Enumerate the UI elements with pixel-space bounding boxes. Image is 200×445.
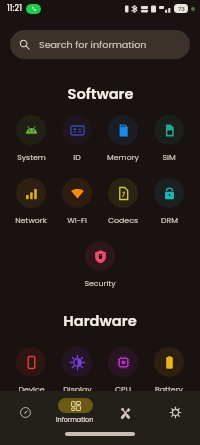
staticText: Network bbox=[15, 215, 47, 226]
button[interactable]: Display bbox=[52, 347, 102, 395]
button[interactable]: SIM bbox=[144, 115, 194, 163]
button[interactable]: System bbox=[6, 115, 56, 163]
staticText: Software bbox=[67, 84, 134, 104]
staticText: CPU bbox=[115, 384, 131, 395]
button[interactable]: Dashboard bbox=[0, 398, 50, 427]
staticText: DRM bbox=[161, 215, 178, 226]
button[interactable]: Codecs bbox=[98, 178, 148, 226]
staticText: Wi-Fi bbox=[67, 215, 87, 226]
staticText: 11:21 bbox=[7, 3, 22, 14]
button[interactable]: Tools bbox=[100, 398, 150, 427]
staticText: Display bbox=[63, 384, 92, 395]
button[interactable]: CPU bbox=[98, 347, 148, 395]
button[interactable]: Battery bbox=[144, 347, 194, 395]
button[interactable]: Information bbox=[50, 398, 100, 424]
staticText: 73 bbox=[178, 5, 185, 13]
staticText: SIM bbox=[162, 152, 176, 163]
button[interactable]: Wi-Fi bbox=[52, 178, 102, 226]
staticText: Memory bbox=[107, 152, 139, 163]
staticText: Information bbox=[56, 415, 94, 424]
staticText: Search for information bbox=[39, 38, 147, 51]
staticText: Security bbox=[84, 278, 116, 289]
button[interactable]: Device bbox=[6, 347, 56, 395]
button[interactable]: DRM bbox=[144, 178, 194, 226]
button[interactable]: Search for information bbox=[10, 30, 190, 59]
staticText: ID bbox=[73, 152, 81, 163]
button[interactable]: Settings bbox=[150, 398, 200, 427]
staticText: System bbox=[17, 152, 46, 163]
button[interactable]: Memory bbox=[98, 115, 148, 163]
staticText: Battery bbox=[155, 384, 183, 395]
staticText: Device bbox=[18, 384, 45, 395]
staticText: Hardware bbox=[63, 311, 137, 331]
staticText: Codecs bbox=[108, 215, 138, 226]
button[interactable]: ID bbox=[52, 115, 102, 163]
button[interactable]: Network bbox=[6, 178, 56, 226]
button[interactable]: Security bbox=[75, 241, 125, 289]
